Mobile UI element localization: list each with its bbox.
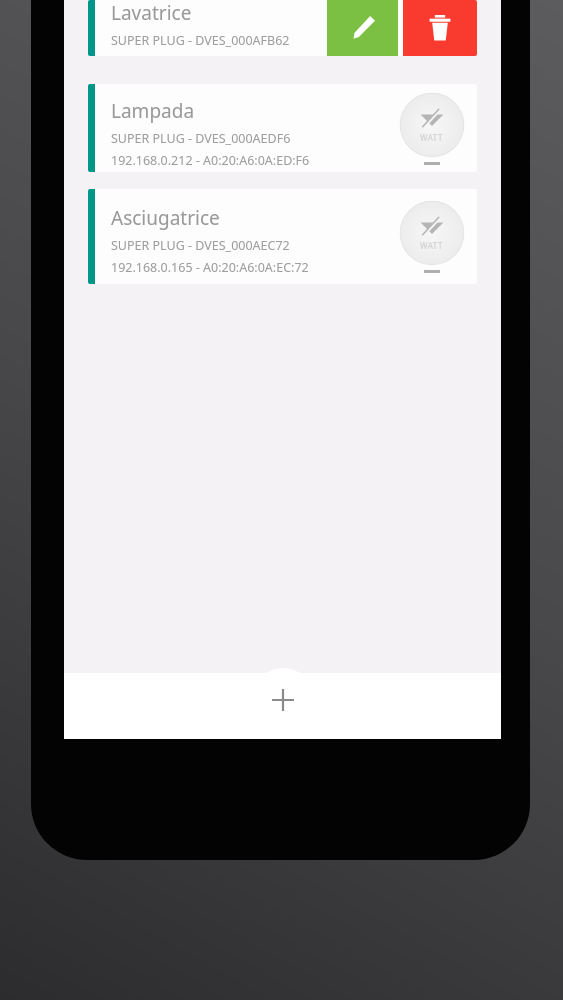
button[interactable]: Watt reading, offline	[393, 189, 471, 284]
button[interactable]: Watt reading, offline	[393, 84, 471, 172]
staticText: Asciugatrice	[111, 205, 220, 231]
button[interactable]: Lampada	[88, 84, 477, 172]
staticText: 192.168.0.212 - A0:20:A6:0A:ED:F6	[111, 152, 310, 169]
staticText: 192.168.0.165 - A0:20:A6:0A:EC:72	[111, 259, 309, 276]
button[interactable]: Lavatrice	[88, 0, 477, 56]
button[interactable]: Add device	[251, 668, 315, 732]
button[interactable]: Asciugatrice	[88, 189, 477, 284]
staticText: WATT	[420, 132, 444, 143]
staticText: SUPER PLUG - DVES_000AEC72	[111, 237, 290, 254]
button[interactable]: Delete	[403, 0, 477, 56]
staticText: Lavatrice	[111, 0, 192, 26]
staticText: SUPER PLUG - DVES_000AFB62	[111, 32, 290, 49]
staticText: Lampada	[111, 98, 195, 124]
button[interactable]: Edit	[327, 0, 398, 56]
staticText: SUPER PLUG - DVES_000AEDF6	[111, 130, 291, 147]
staticText: WATT	[420, 240, 444, 251]
